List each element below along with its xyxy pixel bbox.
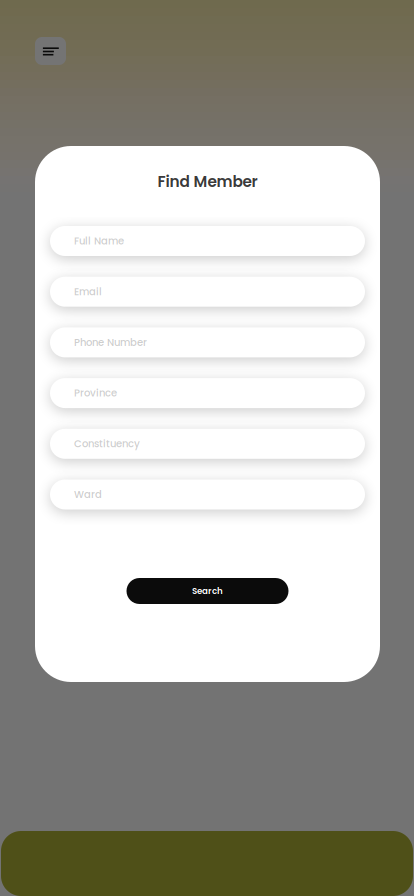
- staticText: Search: [192, 585, 223, 597]
- button[interactable]: Province: [50, 378, 365, 408]
- staticText: Email: [74, 285, 102, 299]
- button[interactable]: Search: [126, 578, 288, 604]
- button[interactable]: Menu: [35, 37, 66, 65]
- button[interactable]: Phone Number: [50, 327, 365, 357]
- button[interactable]: Constituency: [50, 429, 365, 459]
- staticText: Full Name: [74, 234, 124, 248]
- staticText: Constituency: [74, 437, 140, 451]
- staticText: Province: [74, 386, 117, 400]
- button[interactable]: Ward: [50, 479, 365, 509]
- staticText: Find Member: [157, 171, 257, 192]
- button[interactable]: Email: [50, 277, 365, 307]
- staticText: Phone Number: [74, 335, 147, 349]
- staticText: Ward: [74, 487, 102, 501]
- button[interactable]: Full Name: [50, 226, 365, 256]
